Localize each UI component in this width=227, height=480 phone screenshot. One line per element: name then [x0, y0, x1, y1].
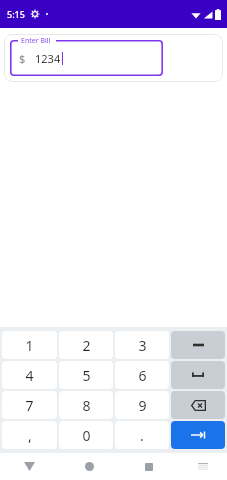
button[interactable]: 2 [59, 331, 113, 359]
button[interactable]: 0 [59, 421, 113, 449]
button[interactable]: Space [171, 361, 225, 389]
button[interactable]: Backspace [171, 391, 225, 419]
staticText: 1 [25, 336, 34, 355]
button[interactable]: 8 [59, 391, 113, 419]
staticText: 7 [25, 396, 34, 415]
staticText: 8 [82, 396, 91, 415]
staticText: . [140, 426, 144, 445]
staticText: Enter Bill [21, 36, 51, 46]
staticText: 5:15 [7, 8, 25, 20]
button[interactable]: 7 [2, 391, 57, 419]
staticText: 0 [82, 426, 91, 445]
staticText: 3 [138, 336, 147, 355]
staticText: $ [19, 51, 26, 66]
button[interactable]: 9 [115, 391, 169, 419]
staticText: 6 [138, 366, 147, 385]
button[interactable]: 1 [2, 331, 57, 359]
button[interactable]: Minus [171, 331, 225, 359]
staticText: 9 [138, 396, 147, 415]
button[interactable]: Change keyboard [179, 453, 227, 480]
button[interactable]: , [2, 421, 57, 449]
button[interactable]: . [115, 421, 169, 449]
button[interactable]: 4 [2, 361, 57, 389]
staticText: 1234 [35, 51, 61, 66]
button[interactable]: Back [0, 453, 59, 480]
button[interactable]: 3 [115, 331, 169, 359]
button[interactable]: Home [59, 453, 119, 480]
button[interactable]: 6 [115, 361, 169, 389]
staticText: , [28, 426, 32, 445]
staticText: 5 [82, 366, 91, 385]
button[interactable]: Next [171, 421, 225, 449]
staticText: 4 [25, 366, 34, 385]
button[interactable]: 5 [59, 361, 113, 389]
staticText: 2 [82, 336, 91, 355]
button[interactable]: Enter Bill [10, 40, 163, 76]
button[interactable]: Recent apps [119, 453, 179, 480]
